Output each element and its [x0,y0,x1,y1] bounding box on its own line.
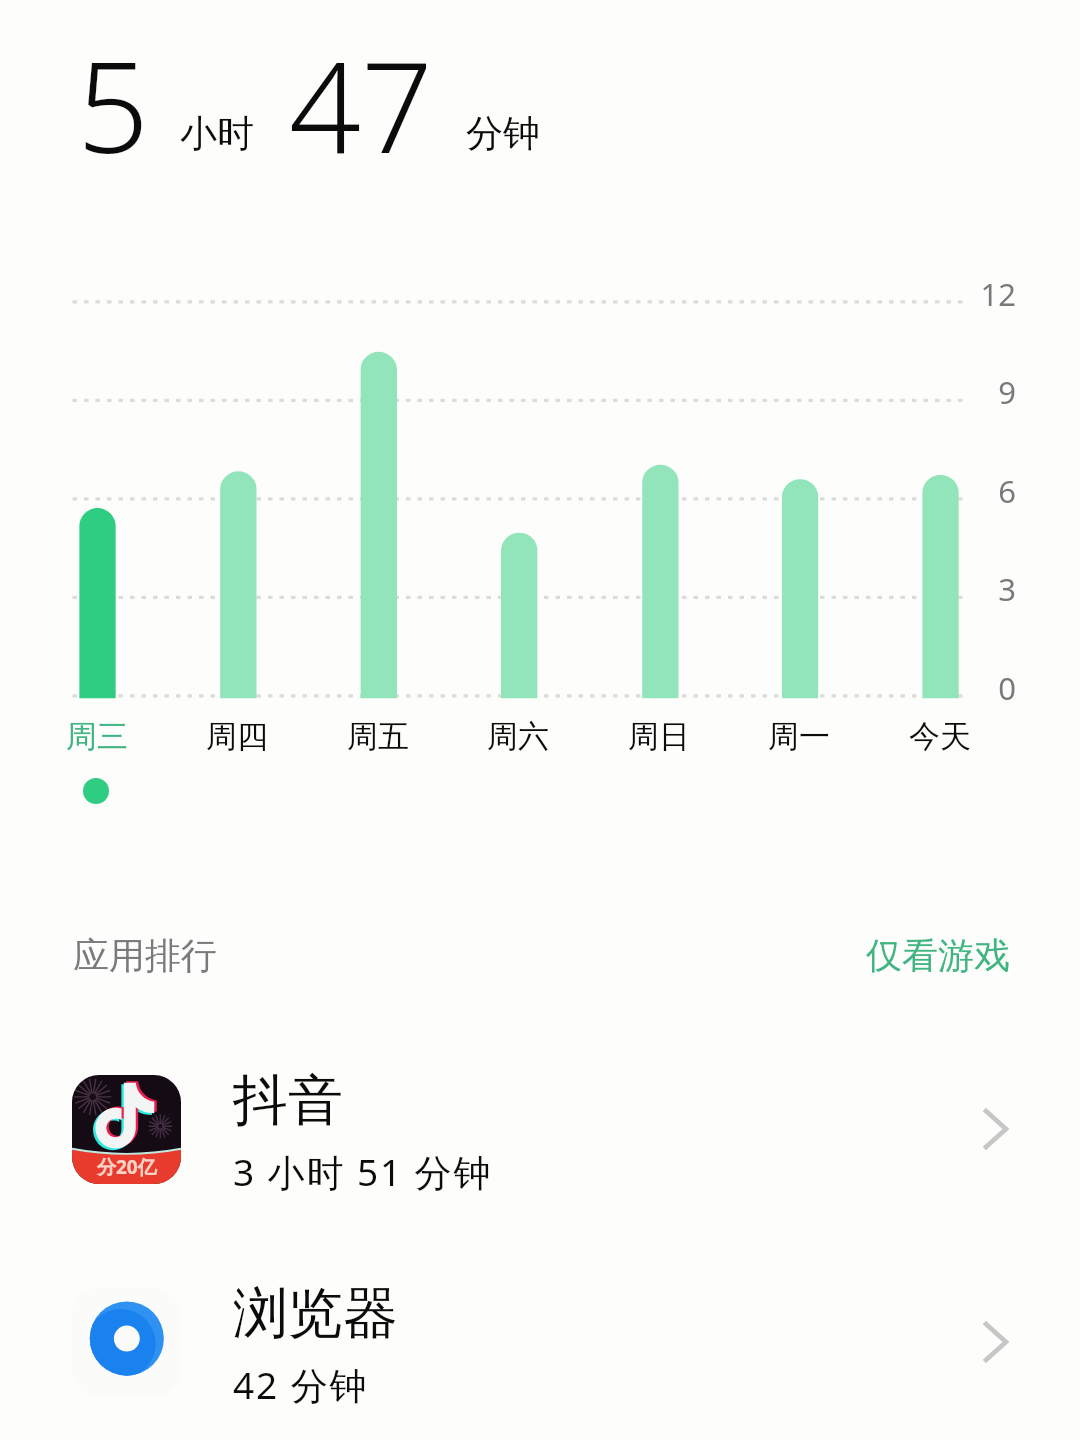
staticText: 周五 [317,717,439,756]
button[interactable]: 浏览器 [0,1270,1080,1418]
staticText: 周三 [36,717,158,756]
staticText: 周一 [738,717,860,756]
staticText: 12 [896,273,1016,315]
button[interactable]: 周日 [599,290,721,765]
staticText: 周六 [457,717,579,756]
button[interactable]: 周三 [37,290,159,765]
staticText: 周四 [176,717,298,756]
button[interactable]: 今天 [880,290,1002,765]
staticText: 今天 [879,717,1001,756]
button[interactable]: 周六 [458,290,580,765]
staticText: 47 [289,18,433,190]
button[interactable]: 仅看游戏 [846,913,1030,998]
staticText: 仅看游戏 [866,933,1010,978]
button[interactable]: 分20亿 [0,1057,1080,1205]
staticText: 42 分钟 [233,1359,369,1410]
staticText: 抖音 [233,1066,343,1135]
staticText: 小时 [180,110,254,157]
button[interactable]: 周四 [177,290,299,765]
button[interactable]: Open 抖音 details [960,1093,1032,1165]
staticText: 0 [896,667,1016,709]
staticText: 应用排行 [73,933,217,978]
button[interactable]: 周一 [739,290,861,765]
staticText: 9 [896,371,1016,413]
staticText: 周日 [598,717,720,756]
staticText: 3 小时 51 分钟 [233,1146,493,1197]
button[interactable]: 周五 [318,290,440,765]
staticText: 6 [896,470,1016,512]
staticText: 分钟 [466,110,540,157]
staticText: 浏览器 [233,1279,398,1348]
staticText: 5 [77,18,149,190]
staticText: 3 [896,568,1016,610]
staticText: 分20亿 [97,1154,157,1180]
button[interactable]: Open 浏览器 details [960,1306,1032,1378]
